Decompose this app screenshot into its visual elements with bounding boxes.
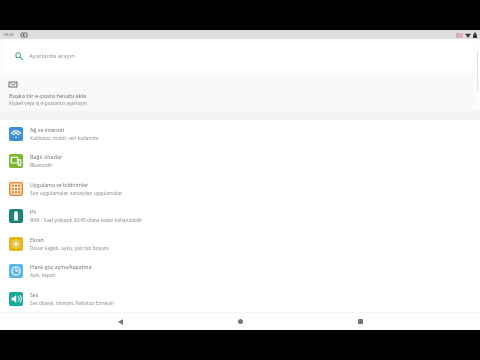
- button[interactable]: Ayarlarda arayın: [4, 42, 474, 70]
- button[interactable]: Home: [210, 313, 270, 330]
- button[interactable]: Ekran: [0, 230, 480, 257]
- staticText: Başka bir e-posta hesabı ekle: [9, 92, 87, 100]
- staticText: Ses: [30, 291, 39, 298]
- staticText: %49 - Saat yaklaşık 20:45 olana kadar ku…: [30, 217, 143, 224]
- staticText: Bluetooth: [30, 162, 53, 169]
- staticText: Bağlı cihazlar: [30, 153, 63, 160]
- button[interactable]: Recent apps: [330, 313, 390, 330]
- button[interactable]: Uygulama ve bildirimler: [0, 175, 480, 202]
- staticText: Ses düzeyi, titreşim, Rahatsız Etmeyin: [30, 300, 114, 307]
- staticText: Ekran: [30, 236, 44, 243]
- staticText: Duvar kağıdı, uyku, yazı tipi boyutu: [30, 245, 109, 252]
- staticText: Açık, kapalı: [30, 272, 56, 279]
- staticText: Ayarlarda arayın: [29, 52, 76, 60]
- button[interactable]: Planlı güç açma/kapatma: [0, 257, 480, 284]
- staticText: Planlı güç açma/kapatma: [30, 263, 92, 270]
- button[interactable]: Pil: [0, 202, 480, 229]
- button[interactable]: Ağ ve internet: [0, 120, 480, 147]
- button[interactable]: Ses: [0, 285, 480, 312]
- staticText: Kablosuz, mobil, veri kullanımı: [30, 135, 99, 142]
- staticText: Ağ ve internet: [30, 126, 65, 133]
- staticText: Pil: [30, 208, 36, 215]
- staticText: Kişisel veya iş e-postanızı ayarlayın: [9, 100, 87, 107]
- button[interactable]: Back: [90, 313, 150, 330]
- button[interactable]: Başka bir e-posta hesabı ekle: [0, 74, 474, 111]
- staticText: Uygulama ve bildirimler: [30, 181, 89, 188]
- staticText: 18:33: [3, 32, 14, 38]
- staticText: Son uygulamalar, varsayılan uygulamalar: [30, 190, 123, 197]
- button[interactable]: Bağlı cihazlar: [0, 147, 480, 174]
